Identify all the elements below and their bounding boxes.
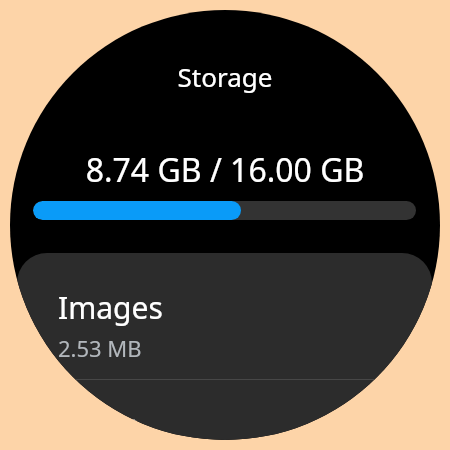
button[interactable]: Images	[17, 253, 432, 379]
staticText: 2.53 MB	[58, 333, 142, 363]
staticText: Audio	[58, 404, 141, 440]
staticText: Images	[58, 287, 163, 328]
staticText: 8.74 GB / 16.00 GB	[10, 148, 440, 192]
button[interactable]: Audio	[17, 380, 432, 440]
staticText: Storage	[10, 59, 440, 94]
button[interactable]	[33, 201, 416, 220]
